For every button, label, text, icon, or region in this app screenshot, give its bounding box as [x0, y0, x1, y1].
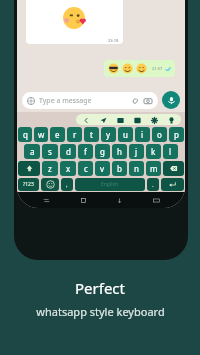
staticText: English [101, 181, 119, 188]
staticText: , [66, 181, 68, 189]
staticText: t [90, 129, 93, 140]
button[interactable]: f [78, 144, 93, 159]
button[interactable]: Voice message [162, 91, 180, 109]
button[interactable]: Send [99, 116, 107, 124]
button[interactable]: x [60, 161, 76, 176]
staticText: 23:18 [108, 38, 119, 43]
button[interactable]: . [147, 178, 159, 191]
button[interactable]: Recents [39, 193, 53, 207]
button[interactable]: Keyboard [149, 193, 163, 207]
staticText: v [100, 163, 105, 174]
staticText: x [66, 163, 71, 174]
button[interactable]: u [118, 127, 133, 142]
staticText: f [84, 146, 87, 157]
button[interactable]: Backspace [163, 161, 184, 176]
staticText: y [106, 129, 111, 140]
button[interactable]: English [75, 178, 145, 191]
staticText: s [48, 146, 52, 157]
button[interactable]: i [135, 127, 150, 142]
button[interactable]: m [146, 161, 161, 176]
staticText: m [150, 163, 158, 174]
button[interactable]: Enter [161, 178, 184, 191]
button[interactable]: Back [112, 193, 126, 207]
staticText: e [55, 129, 60, 140]
button[interactable]: z [42, 161, 58, 176]
button[interactable]: Back [82, 116, 90, 124]
staticText: 21:57 [152, 66, 163, 71]
staticText: i [141, 129, 144, 140]
staticText: a [30, 146, 35, 157]
button[interactable]: Attach [130, 96, 140, 106]
staticText: l [169, 146, 172, 157]
button[interactable]: k [146, 144, 161, 159]
staticText: z [48, 163, 52, 174]
staticText: g [100, 146, 105, 157]
button[interactable]: Home [76, 193, 90, 207]
button[interactable]: Camera [143, 96, 153, 106]
button[interactable]: 21:57 [108, 63, 171, 74]
button[interactable]: t [84, 127, 99, 142]
staticText: q [23, 129, 28, 140]
button[interactable]: r [67, 127, 82, 142]
button[interactable]: b [112, 161, 127, 176]
button[interactable]: ?123 [18, 178, 39, 191]
button[interactable]: , [61, 178, 73, 191]
staticText: b [117, 163, 122, 174]
button[interactable]: a [24, 144, 40, 159]
button[interactable]: c [78, 161, 93, 176]
staticText: ?123 [23, 181, 34, 188]
staticText: h [117, 146, 122, 157]
button[interactable]: Settings [150, 116, 158, 124]
staticText: d [66, 146, 71, 157]
button[interactable]: Type a message [27, 92, 153, 109]
staticText: whatsapp style keyboard [36, 304, 165, 319]
button[interactable]: Gallery [116, 116, 124, 124]
button[interactable]: q [18, 127, 32, 142]
staticText: . [152, 181, 154, 189]
staticText: j [135, 146, 138, 157]
staticText: Type a message [39, 96, 92, 106]
staticText: r [73, 129, 77, 140]
button[interactable]: s [42, 144, 58, 159]
button[interactable]: h [112, 144, 127, 159]
staticText: p [174, 129, 179, 140]
button[interactable]: d [60, 144, 76, 159]
button[interactable]: j [129, 144, 144, 159]
button[interactable]: l [163, 144, 178, 159]
button[interactable]: Themes [167, 116, 175, 124]
staticText: o [157, 129, 162, 140]
button[interactable]: n [129, 161, 144, 176]
button[interactable]: e [50, 127, 65, 142]
staticText: k [151, 146, 156, 157]
staticText: Perfect [75, 278, 125, 298]
button[interactable]: y [101, 127, 116, 142]
staticText: w [38, 129, 45, 140]
button[interactable]: Shift [18, 161, 40, 176]
button[interactable]: p [169, 127, 184, 142]
button[interactable]: w [34, 127, 48, 142]
staticText: c [84, 163, 88, 174]
button[interactable]: Emoji [41, 178, 59, 191]
staticText: u [123, 129, 128, 140]
staticText: n [134, 163, 139, 174]
button[interactable]: Stickers [133, 116, 141, 124]
button[interactable]: v [95, 161, 110, 176]
button[interactable]: o [152, 127, 167, 142]
button[interactable]: g [95, 144, 110, 159]
button[interactable]: 23:18 [26, 0, 123, 44]
